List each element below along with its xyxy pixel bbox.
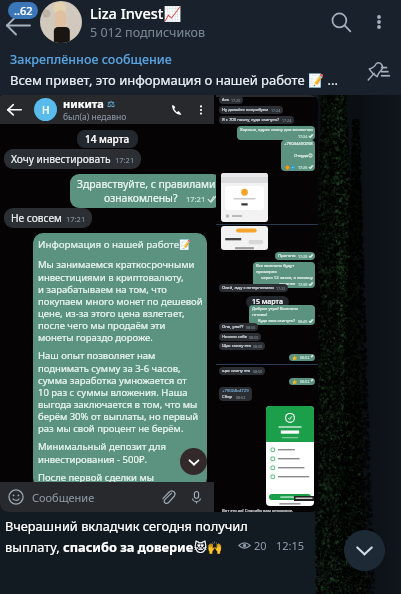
staticText: Доброе утро! Выплаты готовы! <box>252 306 313 318</box>
button[interactable]: Channel avatar <box>40 1 82 43</box>
staticText: Наш опыт позволяет нам поднимать сумму з… <box>38 349 199 434</box>
staticText: 17:28 <box>298 254 308 259</box>
staticText: 17:30 <box>298 282 308 287</box>
staticText: 08:50 <box>246 325 256 330</box>
staticText: 08:52 <box>300 355 310 360</box>
staticText: выплату, <box>5 538 63 555</box>
staticText: 08:52 <box>236 395 246 400</box>
button[interactable]: Pinned messages <box>357 48 401 92</box>
staticText: Вот это да! Спасибо вам огромное. <box>222 508 294 512</box>
staticText: 17:24 <box>282 118 292 123</box>
staticText: Куда вам скинуть? <box>258 318 296 324</box>
staticText: 14 марта <box>85 132 130 146</box>
staticText: Все выплаты будут примерно <box>256 263 313 275</box>
staticText: Сбер <box>222 394 233 400</box>
staticText: 08:50 <box>249 335 259 340</box>
staticText: 20 <box>254 538 267 553</box>
staticText: 17:24 <box>298 134 308 139</box>
staticText: 08:45 <box>298 319 308 324</box>
staticText: Закреплённое сообщение <box>10 51 172 68</box>
staticText: Опа, уже?? <box>222 324 244 330</box>
button[interactable]: Back <box>0 0 40 44</box>
staticText: 🔶💠 <box>285 165 296 170</box>
staticText: 17:24 <box>271 108 281 113</box>
staticText: Хочу инвестировать <box>11 152 111 166</box>
staticText: Ничего себе <box>222 334 247 340</box>
staticText: 17:21 <box>186 194 206 204</box>
button[interactable]: More options <box>362 0 396 44</box>
staticText: Мы занимаемся краткосрочными инвестициям… <box>38 258 203 343</box>
staticText: через 12 часов, я напишу <box>261 275 313 281</box>
staticText: 👍 <box>292 355 298 360</box>
staticText: заранее <box>279 281 296 287</box>
staticText: ..62 <box>14 3 33 18</box>
staticText: +79024b4729 <box>222 388 249 394</box>
staticText: 👍 <box>292 379 298 384</box>
staticText: 5 012 подписчиков <box>90 24 206 41</box>
staticText: Здравствуйте, с правилами <box>77 177 216 191</box>
button[interactable]: Закреплённое сообщение <box>0 44 401 95</box>
staticText: После первой сделки мы <box>38 471 154 484</box>
button[interactable]: Scroll to bottom <box>344 530 385 571</box>
staticText: +79044400258 <box>284 141 313 147</box>
staticText: Всем привет, это информация о нашей рабо… <box>10 71 339 89</box>
staticText: 08:52 <box>300 379 310 384</box>
staticText: 17:21 <box>115 155 135 165</box>
staticText: 15 марта <box>252 297 283 307</box>
staticText: Откуда😊 <box>294 153 313 159</box>
staticText: Я с 700 начну, куда скинуть? <box>222 117 280 123</box>
staticText: 08:50 <box>253 369 263 374</box>
staticText: 08:50 <box>253 344 263 349</box>
staticText: ⚖ <box>107 99 116 109</box>
staticText: Н <box>42 103 50 117</box>
staticText: 17:21 <box>66 214 86 224</box>
button[interactable]: Н <box>0 95 318 512</box>
button[interactable]: Search <box>324 0 358 44</box>
staticText: Хорошо, адрес скину для вложения <box>240 127 313 133</box>
staticText: 17:32 <box>276 286 286 291</box>
staticText: Не совсем <box>11 211 62 225</box>
staticText: 😻🙌 <box>194 540 223 555</box>
staticText: Liza Invest📈 <box>90 3 182 23</box>
staticText: был(а) недавно <box>63 111 127 123</box>
staticText: Щас скину это <box>222 343 251 349</box>
staticText: Ага <box>222 97 229 103</box>
staticText: ознакомлены? <box>104 191 178 205</box>
staticText: никита <box>63 96 104 111</box>
staticText: щас скину это <box>222 368 251 374</box>
staticText: Сообщение <box>32 490 95 505</box>
staticText: спасибо за доверие <box>63 538 194 555</box>
staticText: Окей, жду с нетерпением <box>222 285 274 291</box>
staticText: Вчерашний вкладчик сегодня получил <box>5 517 248 534</box>
staticText: 12:15 <box>276 538 305 553</box>
staticText: Ну давайте попробуем <box>222 107 269 113</box>
staticText: Принято <box>278 253 296 259</box>
staticText: Минимальный депозит для инвестирования -… <box>38 440 166 465</box>
staticText: 17:20 <box>231 98 241 103</box>
staticText: Информация о нашей работе📝 <box>38 238 192 251</box>
staticText: 17:26 <box>298 165 308 170</box>
